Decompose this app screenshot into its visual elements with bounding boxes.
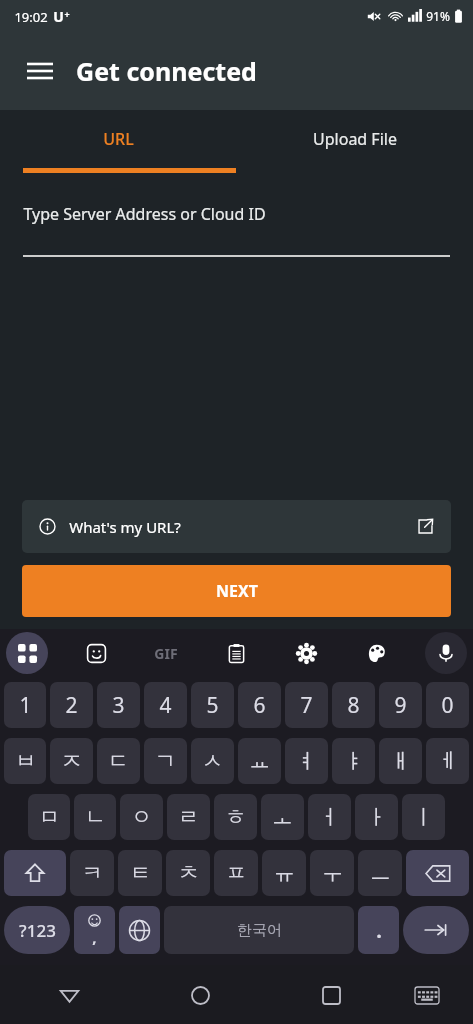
button[interactable]: Recent apps [305,969,357,1021]
button[interactable]: ㄷ [97,738,140,784]
button[interactable]: ㅑ [332,738,375,784]
staticText: ㅡ [370,860,391,886]
button[interactable]: Open navigation menu [18,49,62,93]
staticText: 한국어 [237,921,282,940]
staticText: + [64,8,70,20]
button[interactable]: URL [0,110,236,168]
button[interactable]: Upload File [236,110,473,168]
button[interactable]: ㅍ [214,850,258,896]
staticText: 19:02 [14,8,48,26]
button[interactable]: ?123 [4,906,70,954]
staticText: ㅌ [130,860,151,886]
button[interactable]: Stickers [75,632,117,674]
button[interactable]: ㅐ [379,738,422,784]
button[interactable]: ㅛ [238,738,281,784]
button[interactable]: Emoji and comma [74,906,115,954]
staticText: 6 [253,691,266,720]
button[interactable]: Themes [355,632,397,674]
button[interactable]: ㅎ [214,794,257,840]
button[interactable]: ㅓ [308,794,351,840]
button[interactable]: ㅏ [355,794,398,840]
staticText: What's my URL? [69,517,181,537]
button[interactable]: ㅠ [262,850,306,896]
staticText: 3 [112,691,125,720]
button[interactable]: Change language [119,906,160,954]
staticText: ?123 [19,919,56,942]
staticText: ㅎ [225,804,246,830]
staticText: ㅍ [226,860,247,886]
staticText: 8 [347,691,360,720]
button[interactable]: Back [43,969,95,1021]
staticText: 0 [441,691,454,720]
button[interactable]: ㅅ [191,738,234,784]
staticText: ㅔ [437,748,458,774]
staticText: ㅗ [272,804,293,830]
button[interactable]: NEXT [22,565,451,617]
button[interactable]: 8 [332,682,375,728]
button[interactable]: 1 [4,682,46,728]
button[interactable]: Enter [403,906,469,954]
staticText: Upload File [313,128,397,150]
staticText: 5 [206,691,219,720]
button[interactable]: 한국어 [164,906,354,954]
staticText: 2 [65,691,78,720]
button[interactable]: ㅁ [28,794,70,840]
staticText: 7 [300,691,313,720]
button[interactable]: ㄱ [144,738,187,784]
staticText: , [92,927,97,947]
staticText: ㄹ [178,804,199,830]
button[interactable]: 4 [144,682,187,728]
staticText: NEXT [216,580,258,602]
staticText: Type Server Address or Cloud ID [23,203,266,225]
button[interactable]: ㅡ [358,850,402,896]
button[interactable]: Keyboard apps [6,632,48,674]
staticText: ㅏ [366,804,387,830]
button[interactable]: ㅂ [4,738,46,784]
button[interactable]: 9 [379,682,422,728]
staticText: ㄴ [85,804,106,830]
button[interactable]: ㅋ [70,850,114,896]
staticText: 4 [159,691,172,720]
button[interactable]: ㄹ [167,794,210,840]
staticText: ㅐ [390,748,411,774]
staticText: ㅅ [202,748,223,774]
staticText: ㅑ [343,748,364,774]
button[interactable]: 6 [238,682,281,728]
button[interactable]: Home [174,969,226,1021]
button[interactable]: ㅜ [310,850,354,896]
button[interactable]: ㅈ [50,738,93,784]
button[interactable]: Switch keyboard [401,969,453,1021]
staticText: ㅕ [296,748,317,774]
button[interactable]: 7 [285,682,328,728]
staticText: ㄱ [155,748,176,774]
button[interactable]: Settings [285,632,327,674]
button[interactable]: Clipboard [215,632,257,674]
button[interactable]: 2 [50,682,93,728]
button[interactable]: ㅕ [285,738,328,784]
staticText: 91% [426,8,450,24]
staticText: URL [103,128,134,150]
button[interactable]: 5 [191,682,234,728]
button[interactable]: ㅇ [120,794,163,840]
button[interactable]: ㅣ [402,794,445,840]
button[interactable]: ㅌ [118,850,162,896]
staticText: ㅈ [61,748,82,774]
button[interactable]: 3 [97,682,140,728]
staticText: ㅜ [322,860,343,886]
button[interactable]: What's my URL? [22,500,451,553]
staticText: ㅋ [82,860,103,886]
staticText: Get connected [76,54,257,88]
staticText: ㅂ [15,748,36,774]
button[interactable]: ㅔ [426,738,469,784]
staticText: GIF [154,644,178,663]
staticText: U [53,7,64,26]
button[interactable]: ㅗ [261,794,304,840]
button[interactable]: 0 [426,682,469,728]
button[interactable]: Backspace [406,850,469,896]
button[interactable]: Voice input [425,632,467,674]
button[interactable]: ㄴ [74,794,116,840]
button[interactable]: GIF [145,632,187,674]
button[interactable]: ㅊ [166,850,210,896]
button[interactable]: . [358,906,399,954]
button[interactable]: Shift [4,850,66,896]
